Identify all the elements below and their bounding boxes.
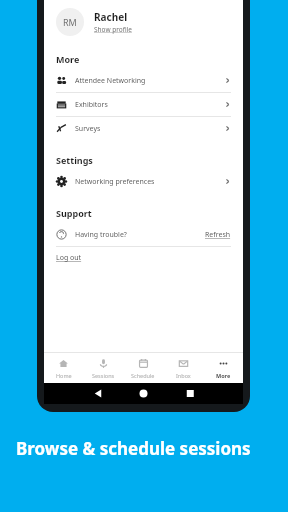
staticText: Settings: [56, 154, 93, 166]
staticText: Home: [56, 372, 72, 379]
button[interactable]: RM: [44, 0, 243, 44]
staticText: Exhibitors: [75, 100, 108, 110]
button[interactable]: Sessions: [83, 353, 123, 383]
staticText: Attendee Networking: [75, 76, 146, 86]
staticText: More: [216, 372, 231, 379]
staticText: Rachel: [94, 10, 128, 24]
staticText: Inbox: [176, 372, 191, 379]
staticText: Sessions: [92, 372, 115, 379]
staticText: RM: [63, 16, 77, 28]
button[interactable]: Exhibitors: [44, 93, 243, 116]
staticText: More: [56, 53, 80, 65]
button[interactable]: Home: [44, 353, 83, 383]
button[interactable]: Schedule: [123, 353, 163, 383]
button[interactable]: Log out: [44, 247, 243, 269]
staticText: Browse & schedule sessions: [16, 437, 251, 460]
button[interactable]: More: [203, 353, 243, 383]
button[interactable]: Having trouble?: [44, 223, 243, 246]
button[interactable]: Inbox: [163, 353, 203, 383]
button[interactable]: Networking preferences: [44, 170, 243, 193]
staticText: Surveys: [75, 124, 101, 134]
button[interactable]: Attendee Networking: [44, 69, 243, 92]
staticText: Show profile: [94, 25, 132, 34]
staticText: Log out: [56, 253, 82, 263]
staticText: Networking preferences: [75, 177, 155, 187]
button[interactable]: Refresh: [205, 230, 231, 240]
staticText: Having trouble?: [75, 230, 127, 240]
staticText: Schedule: [131, 372, 155, 379]
staticText: Support: [56, 207, 92, 219]
button[interactable]: Surveys: [44, 117, 243, 140]
